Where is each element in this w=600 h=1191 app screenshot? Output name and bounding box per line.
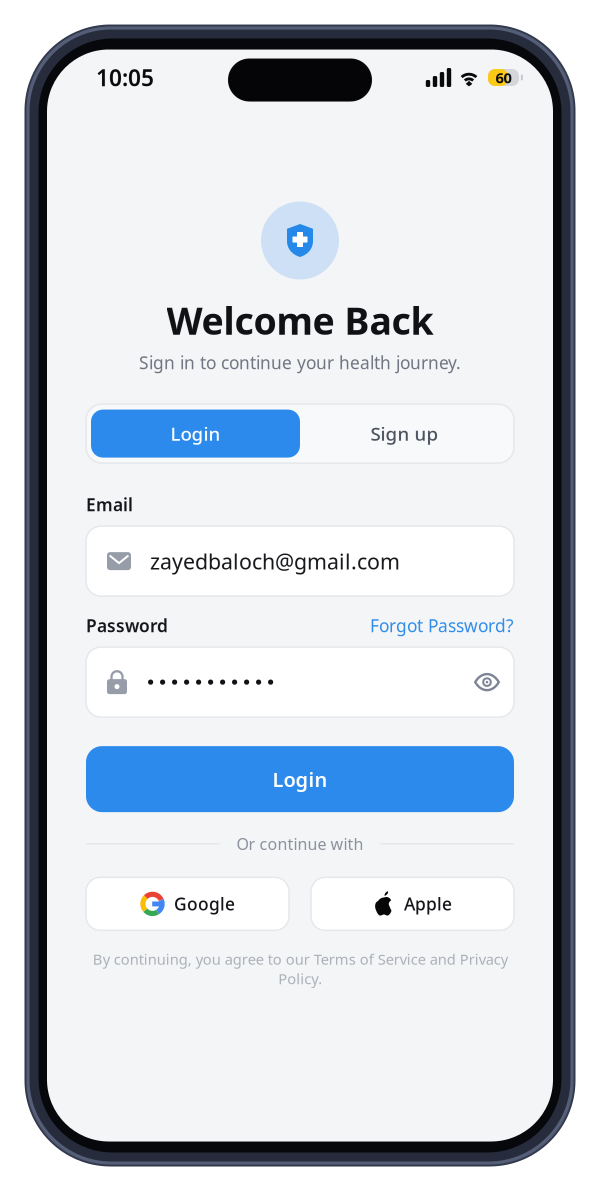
staticText: Password: [86, 614, 168, 637]
button[interactable]: Login: [86, 746, 514, 812]
button[interactable]: Forgot Password?: [370, 614, 514, 637]
staticText: Login: [170, 421, 220, 446]
staticText: zayedbaloch@gmail.com: [150, 547, 400, 575]
button[interactable]: Google: [86, 877, 289, 930]
staticText: Apple: [404, 892, 452, 915]
staticText: 10:05: [96, 62, 154, 92]
staticText: Or continue with: [236, 833, 363, 854]
staticText: Forgot Password?: [370, 614, 514, 637]
button[interactable]: Apple: [311, 877, 514, 930]
staticText: Sign in to continue your health journey.: [139, 351, 461, 374]
staticText: 60: [495, 68, 511, 87]
staticText: Login: [272, 766, 327, 792]
staticText: Sign up: [370, 421, 438, 446]
staticText: Welcome Back: [166, 295, 433, 345]
button[interactable]: Sign up: [300, 410, 509, 458]
staticText: By continuing, you agree to our Terms of…: [92, 949, 507, 988]
staticText: Google: [174, 892, 235, 915]
staticText: Email: [86, 493, 133, 516]
button[interactable]: Login: [91, 410, 300, 458]
